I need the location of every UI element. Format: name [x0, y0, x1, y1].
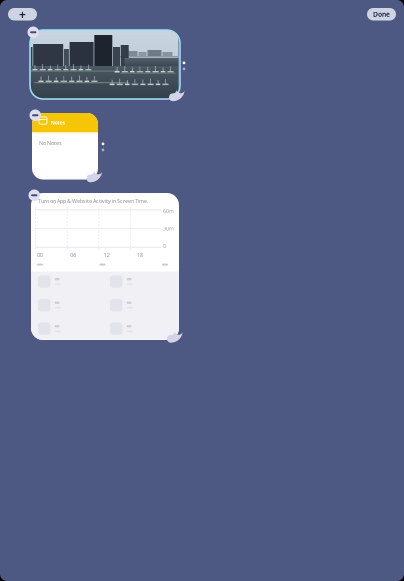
staticText: Notes: [50, 119, 65, 126]
staticText: No Notes: [39, 139, 62, 146]
staticText: 60m: [163, 207, 174, 215]
staticText: 12: [104, 251, 110, 259]
button[interactable]: Done: [367, 8, 396, 20]
staticText: 30m: [163, 225, 174, 232]
button[interactable]: Resize widget: [167, 327, 191, 351]
button[interactable]: Remove widget: [29, 109, 41, 121]
staticText: 06: [70, 251, 76, 259]
staticText: 18: [137, 251, 143, 259]
staticText: Turn on App & Website Activity in Screen…: [38, 197, 148, 204]
button[interactable]: Remove widget: [28, 189, 40, 201]
button[interactable]: Remove widget: [27, 26, 39, 38]
staticText: +: [19, 6, 26, 22]
staticText: 00: [37, 251, 43, 259]
staticText: 0: [163, 242, 166, 249]
button[interactable]: Resize widget: [86, 167, 110, 190]
button[interactable]: Add widget: [8, 8, 37, 20]
staticText: Done: [373, 10, 390, 19]
button[interactable]: Resize widget: [169, 85, 193, 109]
